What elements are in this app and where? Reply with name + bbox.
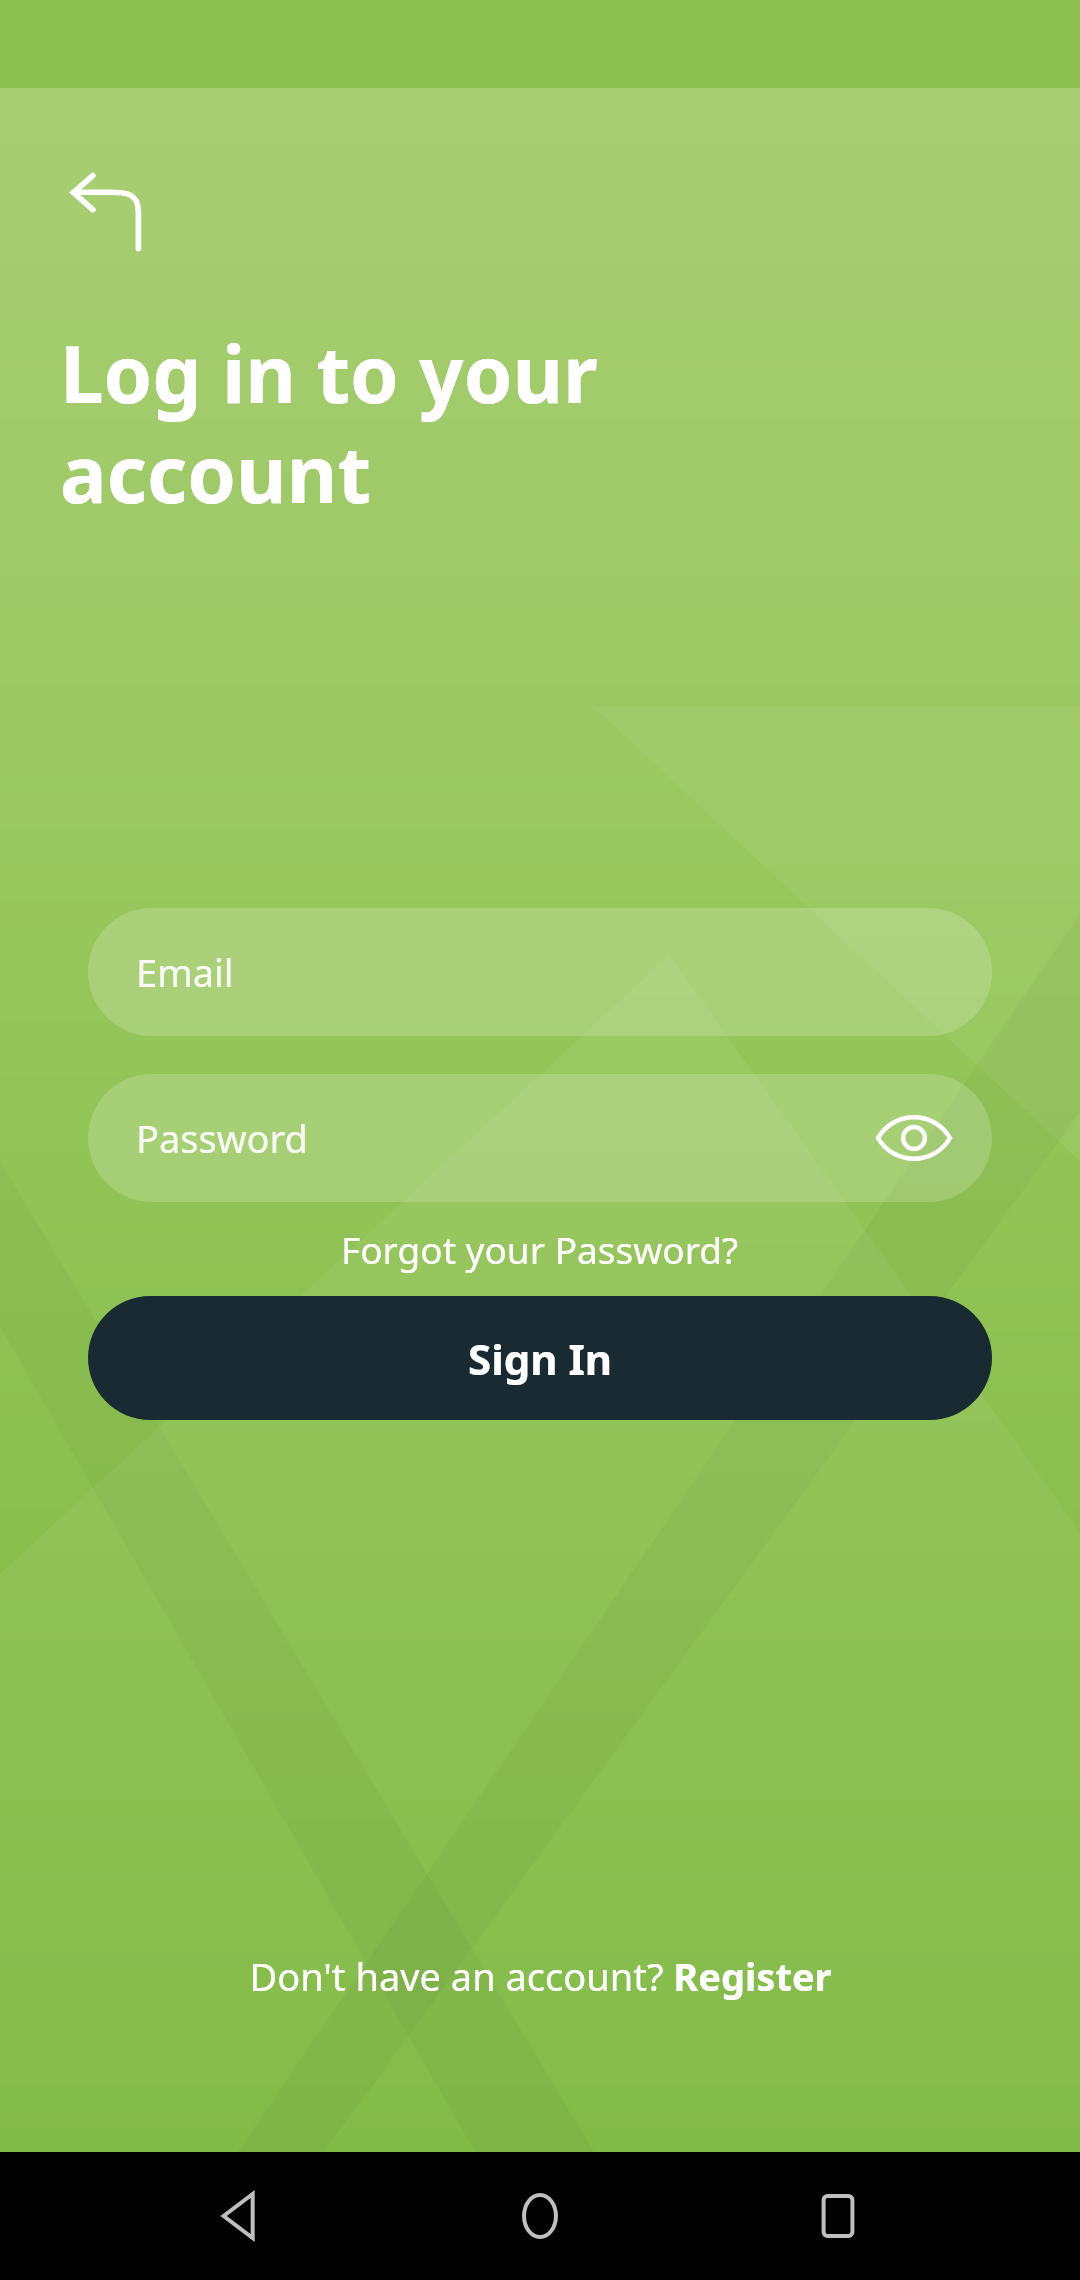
button[interactable]: Forgot your Password? xyxy=(0,1224,1080,1274)
button[interactable]: Email xyxy=(88,908,992,1036)
staticText: Sign In xyxy=(468,1330,613,1387)
button[interactable]: Home xyxy=(485,2161,595,2271)
button[interactable]: Back xyxy=(188,2161,298,2271)
button[interactable]: Don't have an account? Register xyxy=(0,1950,1080,2002)
button[interactable]: Password xyxy=(88,1074,992,1202)
staticText: Email xyxy=(136,946,234,998)
staticText: Don't have an account? Register xyxy=(249,1950,832,2002)
button[interactable]: Sign In xyxy=(88,1296,992,1420)
staticText: Password xyxy=(136,1112,308,1164)
staticText: Log in to your account xyxy=(60,320,598,526)
button[interactable]: Recent apps xyxy=(783,2161,893,2271)
button[interactable]: Show password xyxy=(874,1098,954,1178)
button[interactable]: Back xyxy=(58,162,158,262)
staticText: Forgot your Password? xyxy=(341,1224,739,1274)
